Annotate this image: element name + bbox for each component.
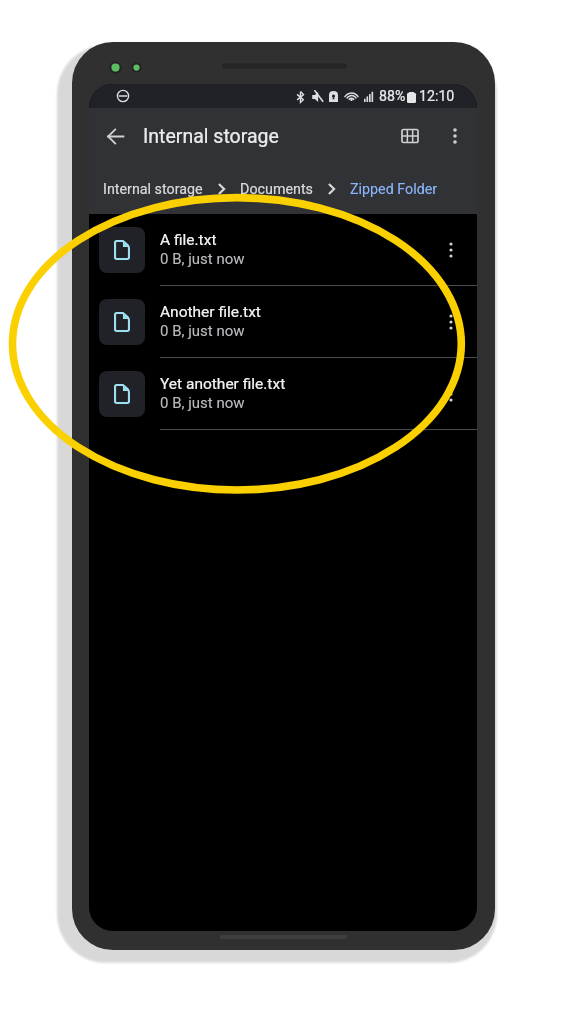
button[interactable]: More options <box>429 228 473 272</box>
staticText: A file.txt <box>160 231 217 249</box>
button[interactable]: Navigate up <box>95 116 135 156</box>
staticText: 12:10 <box>419 88 455 105</box>
staticText: Internal storage <box>143 125 279 148</box>
staticText: 88% <box>379 88 406 105</box>
button[interactable]: Documents <box>240 181 313 198</box>
button[interactable]: Another file.txt <box>89 286 477 358</box>
button[interactable]: More options <box>429 300 473 344</box>
staticText: 0 B, just now <box>160 394 245 412</box>
staticText: Yet another file.txt <box>160 375 286 393</box>
button[interactable]: Grid view <box>387 113 433 159</box>
button[interactable]: Internal storage <box>103 181 203 198</box>
button[interactable]: Zipped Folder <box>350 181 438 198</box>
button[interactable]: More options <box>433 114 477 158</box>
button[interactable]: More options <box>429 372 473 416</box>
staticText: 0 B, just now <box>160 322 245 340</box>
staticText: Another file.txt <box>160 303 261 321</box>
button[interactable]: Yet another file.txt <box>89 358 477 430</box>
button[interactable]: A file.txt <box>89 214 477 286</box>
staticText: 0 B, just now <box>160 250 245 268</box>
